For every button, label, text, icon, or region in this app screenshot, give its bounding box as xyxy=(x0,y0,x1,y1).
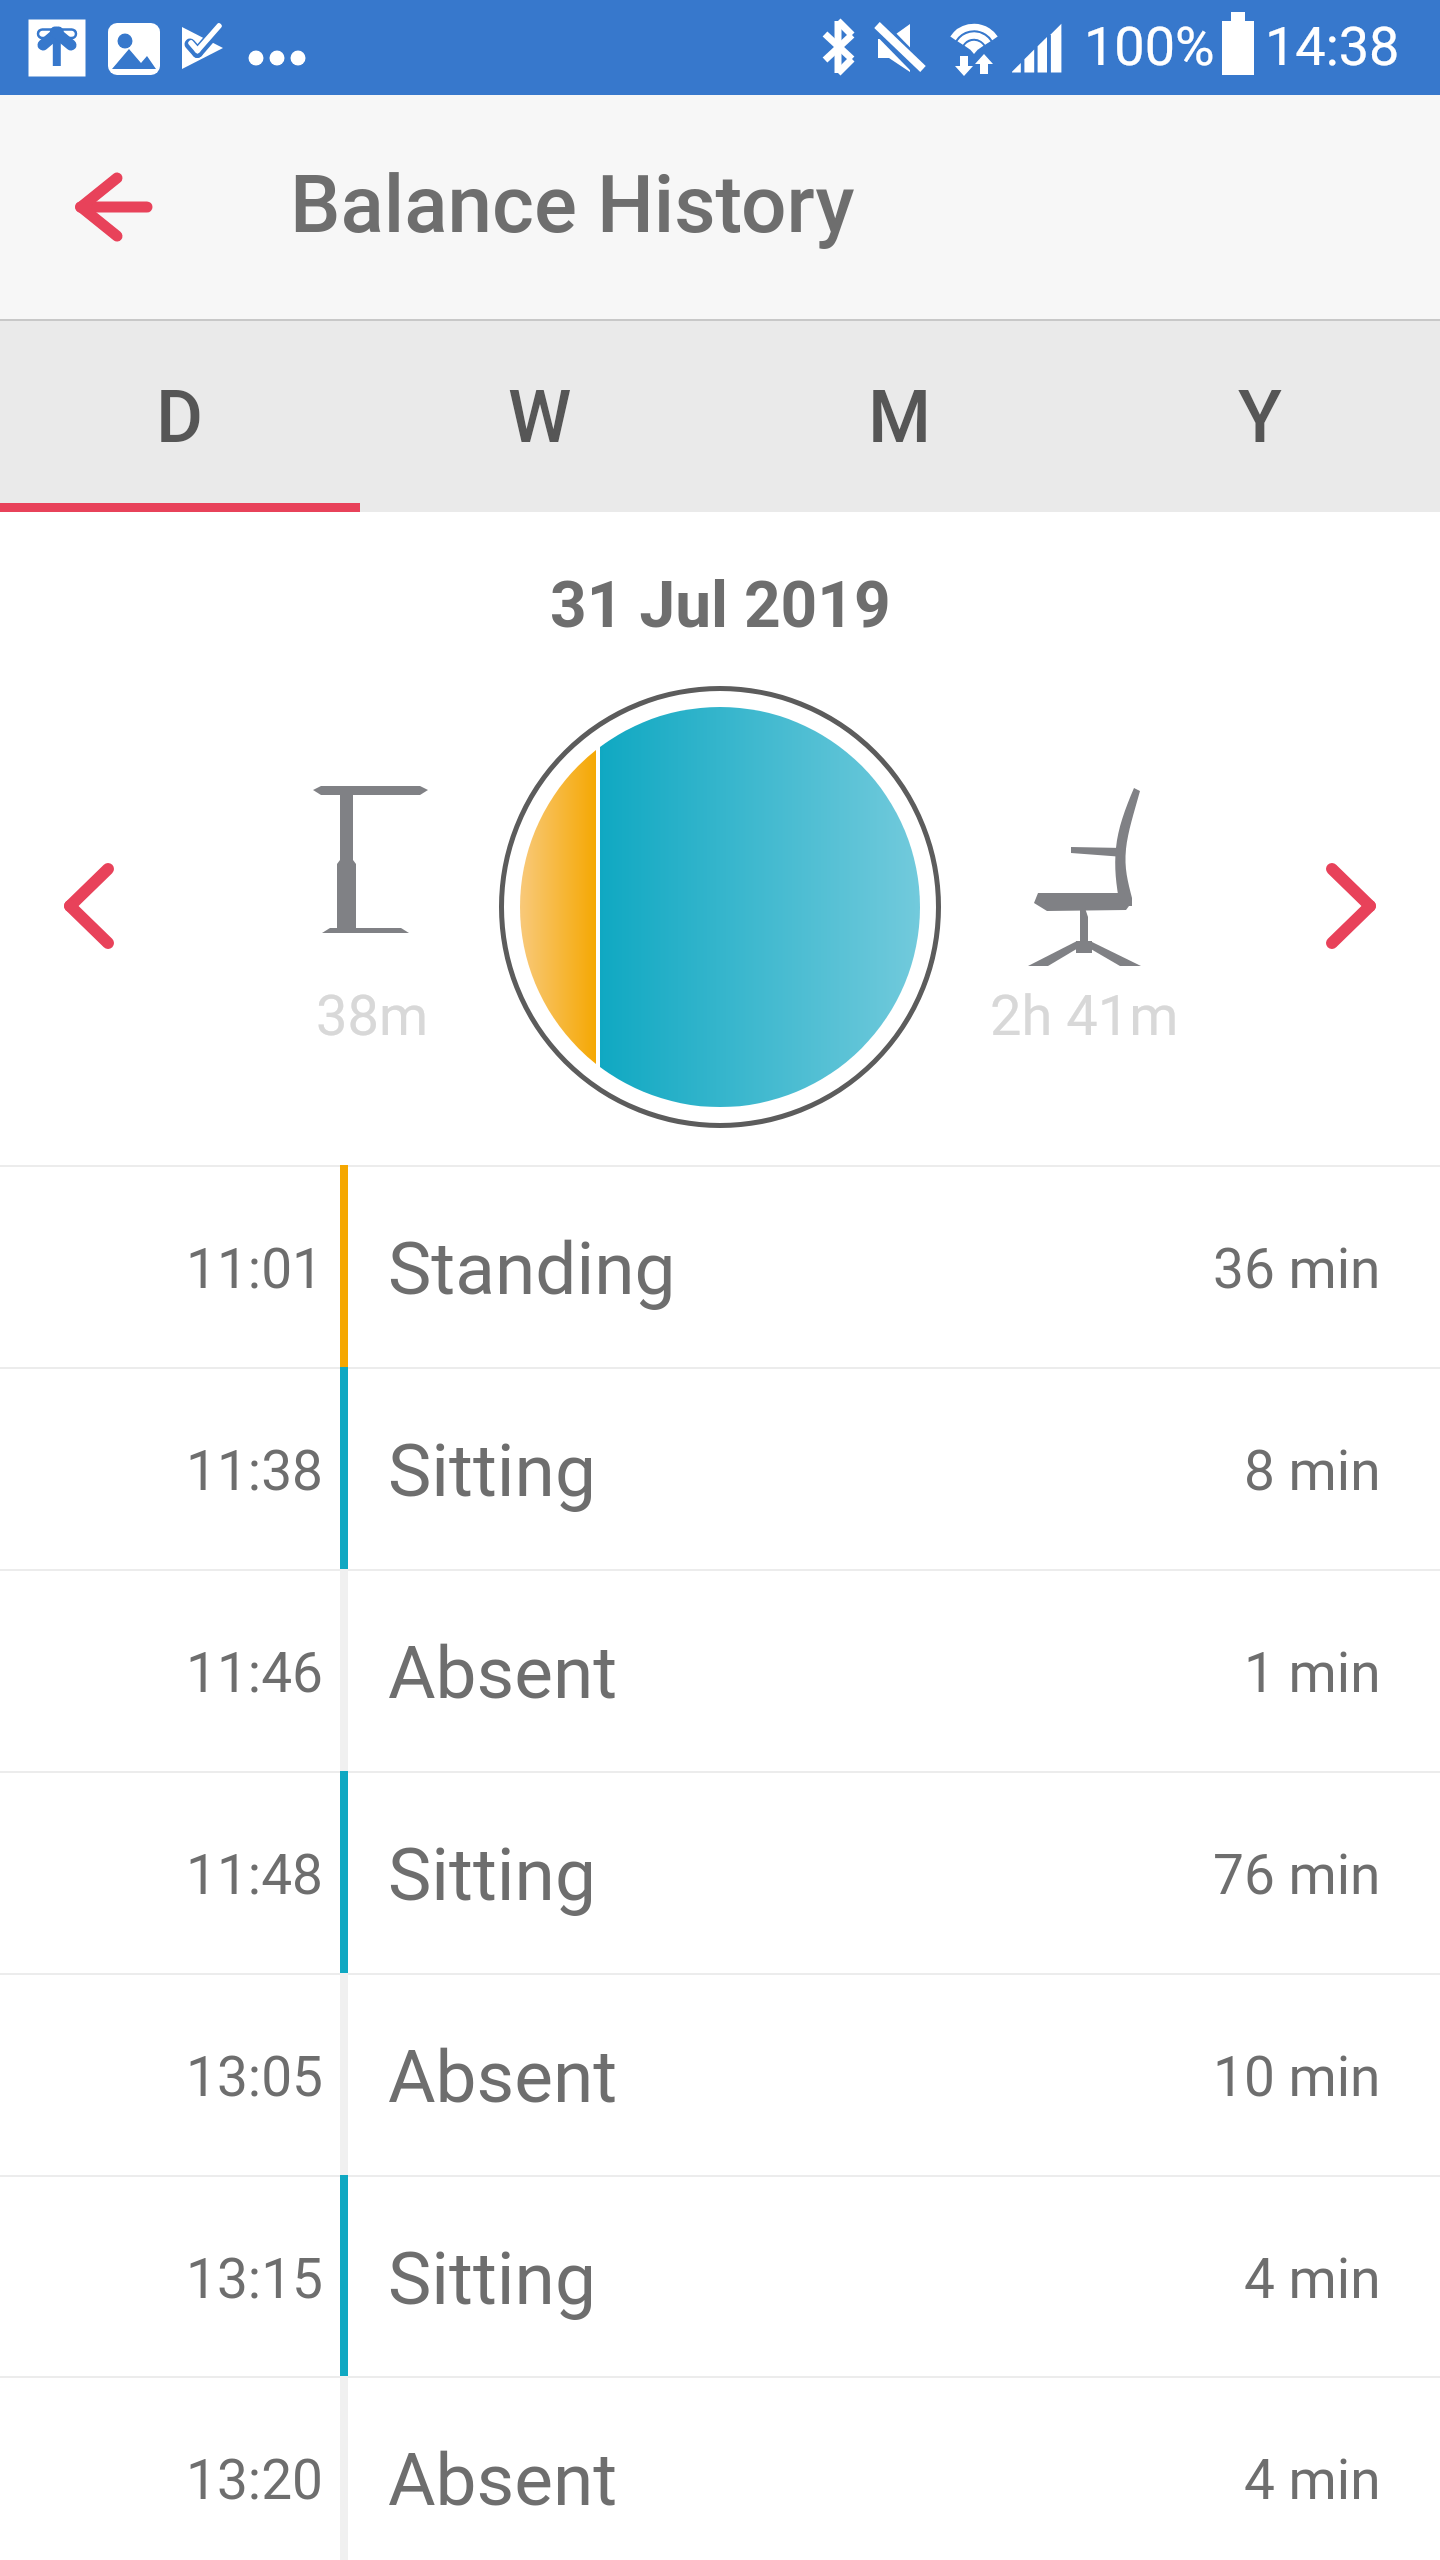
staticText: 13:05 xyxy=(186,2045,323,2109)
staticText: 11:38 xyxy=(186,1439,323,1503)
staticText: 1 min xyxy=(1244,1641,1381,1705)
button[interactable]: M xyxy=(720,319,1080,512)
staticText: 2h 41m xyxy=(990,983,1179,1049)
staticText: Standing xyxy=(388,1226,676,1312)
staticText: Sitting xyxy=(388,2236,596,2322)
staticText: Absent xyxy=(388,2437,618,2523)
button[interactable]: W xyxy=(360,319,720,512)
staticText: 4 min xyxy=(1244,2247,1381,2311)
button[interactable]: Y xyxy=(1080,319,1440,512)
staticText: 4 min xyxy=(1244,2448,1381,2512)
staticText: 8 min xyxy=(1244,1439,1381,1503)
staticText: Sitting xyxy=(388,1832,596,1918)
staticText: 76 min xyxy=(1213,1843,1381,1907)
button[interactable]: 11:46 xyxy=(0,1569,1440,1771)
staticText: 11:48 xyxy=(186,1843,323,1907)
button[interactable]: 13:15 xyxy=(0,2175,1440,2377)
button[interactable]: 11:01 xyxy=(0,1165,1440,1367)
staticText: W xyxy=(508,375,572,459)
button[interactable]: Previous day xyxy=(20,840,150,970)
button[interactable]: 11:38 xyxy=(0,1367,1440,1569)
staticText: 38m xyxy=(316,983,429,1049)
button[interactable]: Next day xyxy=(1290,840,1420,970)
staticText: 13:15 xyxy=(186,2247,323,2311)
staticText: Absent xyxy=(388,1630,618,1716)
button[interactable]: 13:20 xyxy=(0,2376,1440,2560)
staticText: 36 min xyxy=(1213,1237,1381,1301)
staticText: Y xyxy=(1238,375,1282,459)
button[interactable]: 11:48 xyxy=(0,1771,1440,1973)
staticText: 100% xyxy=(1084,15,1215,78)
staticText: Sitting xyxy=(388,1428,596,1514)
staticText: 14:38 xyxy=(1265,15,1400,78)
staticText: 11:01 xyxy=(186,1237,323,1301)
staticText: M xyxy=(868,375,932,459)
staticText: Absent xyxy=(388,2034,618,2120)
staticText: 10 min xyxy=(1213,2045,1381,2109)
staticText: 13:20 xyxy=(186,2448,323,2512)
staticText: D xyxy=(156,375,204,459)
button[interactable]: 13:05 xyxy=(0,1973,1440,2175)
button[interactable]: D xyxy=(0,319,360,512)
staticText: 11:46 xyxy=(186,1641,323,1705)
staticText: 31 Jul 2019 xyxy=(550,568,891,643)
staticText: Balance History xyxy=(290,158,855,252)
button[interactable]: Back xyxy=(52,145,176,269)
